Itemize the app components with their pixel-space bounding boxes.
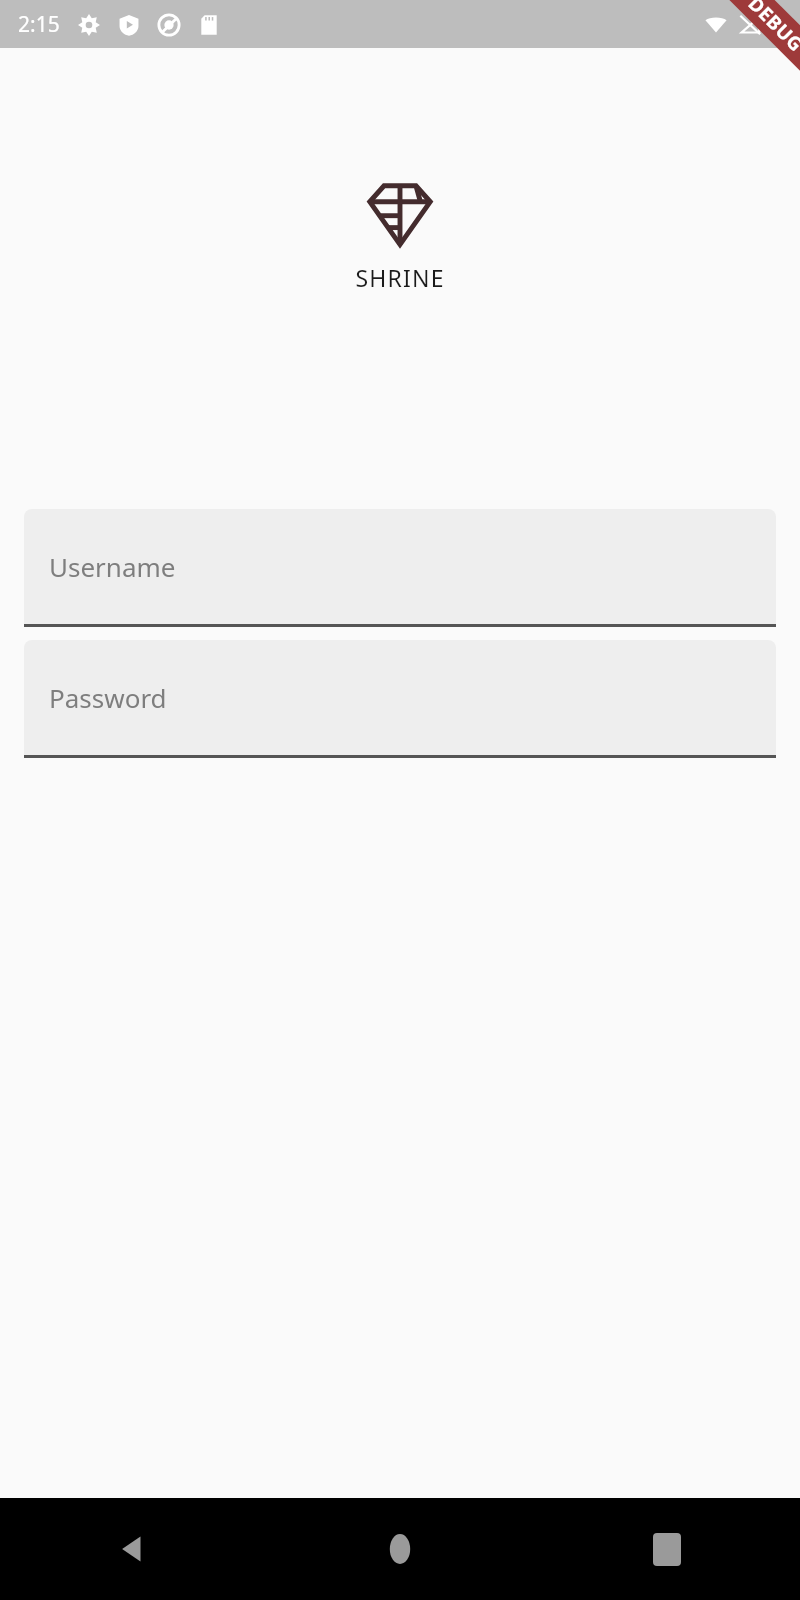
button[interactable]: Recent apps xyxy=(533,1498,800,1600)
staticText: Password xyxy=(49,680,167,715)
staticText: Username xyxy=(49,549,176,584)
button[interactable]: Password xyxy=(24,640,776,758)
staticText: SHRINE xyxy=(355,262,445,293)
staticText: DEBUG xyxy=(743,0,800,57)
staticText: 2:15 xyxy=(18,10,60,39)
button[interactable]: Back xyxy=(0,1498,266,1600)
button[interactable]: Username xyxy=(24,509,776,627)
button[interactable]: Home xyxy=(266,1498,533,1600)
